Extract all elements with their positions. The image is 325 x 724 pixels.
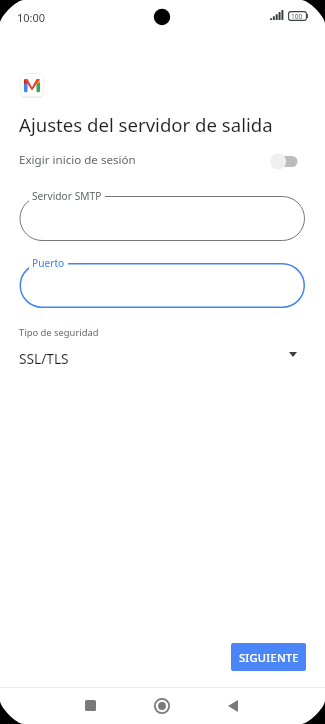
button[interactable]: Back [212,687,253,724]
staticText: Ajustes del servidor de salida [19,112,273,137]
staticText: SIGUIENTE [239,650,299,665]
button[interactable]: Home [141,687,182,724]
staticText: Servidor SMTP [32,189,102,203]
button[interactable]: Tipo de seguridad [0,326,325,372]
button[interactable]: SIGUIENTE [231,643,306,671]
button[interactable]: Puerto [0,263,325,308]
staticText: SSL/TLS [19,349,69,368]
staticText: Exigir inicio de sesión [19,152,136,168]
button[interactable]: Exigir inicio de sesión [0,148,325,174]
staticText: 10:00 [17,10,46,25]
button[interactable]: Servidor SMTP [0,196,325,241]
staticText: Tipo de seguridad [19,326,99,339]
staticText: 100 [291,12,303,21]
button[interactable]: Recent apps [70,687,111,724]
staticText: Puerto [32,256,65,270]
